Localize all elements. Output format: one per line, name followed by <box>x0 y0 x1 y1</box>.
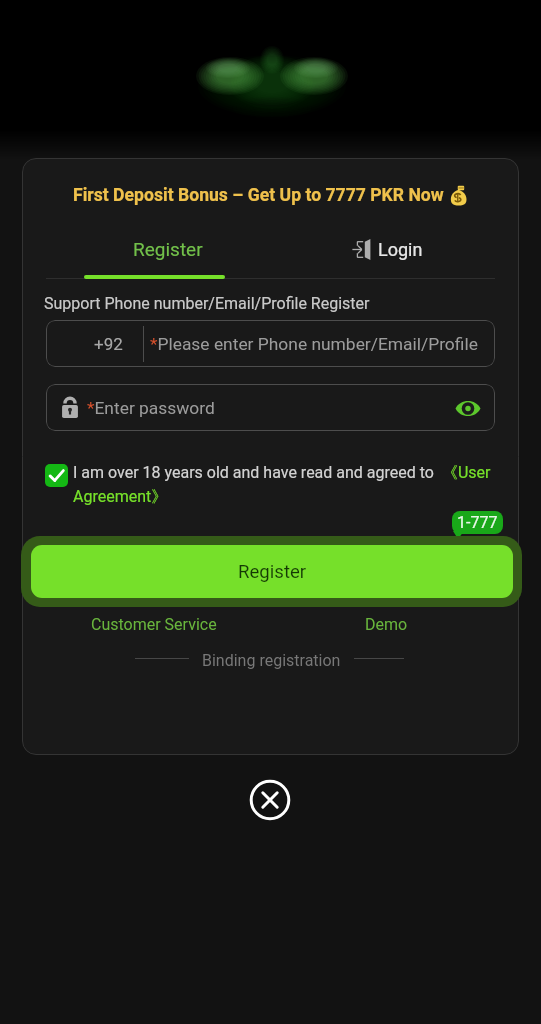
staticText: Register <box>133 238 203 260</box>
staticText: Register <box>238 561 307 583</box>
staticText: First Deposit Bonus – Get Up to 7777 PKR… <box>73 185 444 206</box>
button[interactable]: Login <box>352 234 423 264</box>
button[interactable]: *Enter password <box>46 384 495 431</box>
button[interactable]: I am over 18 <box>45 464 68 487</box>
button[interactable]: Demo <box>346 612 426 636</box>
staticText: Login <box>378 239 423 260</box>
button[interactable]: Register <box>128 236 208 262</box>
staticText: I am over 18 years old and have read and… <box>73 463 498 507</box>
button[interactable]: Show password <box>452 392 484 424</box>
button[interactable]: Close <box>247 777 293 823</box>
button[interactable]: Register <box>21 536 522 607</box>
staticText: Binding registration <box>202 651 341 670</box>
staticText: +92 <box>94 334 123 354</box>
button[interactable]: Customer Service <box>84 612 224 636</box>
staticText: *Enter password <box>87 398 215 418</box>
staticText: *Please enter Phone number/Email/Profile <box>150 334 478 354</box>
button[interactable]: +92 <box>46 320 495 367</box>
staticText: Demo <box>365 615 408 634</box>
staticText: Customer Service <box>91 615 217 634</box>
staticText: 1-777 <box>457 513 498 532</box>
staticText: Support Phone number/Email/Profile Regis… <box>44 294 370 313</box>
